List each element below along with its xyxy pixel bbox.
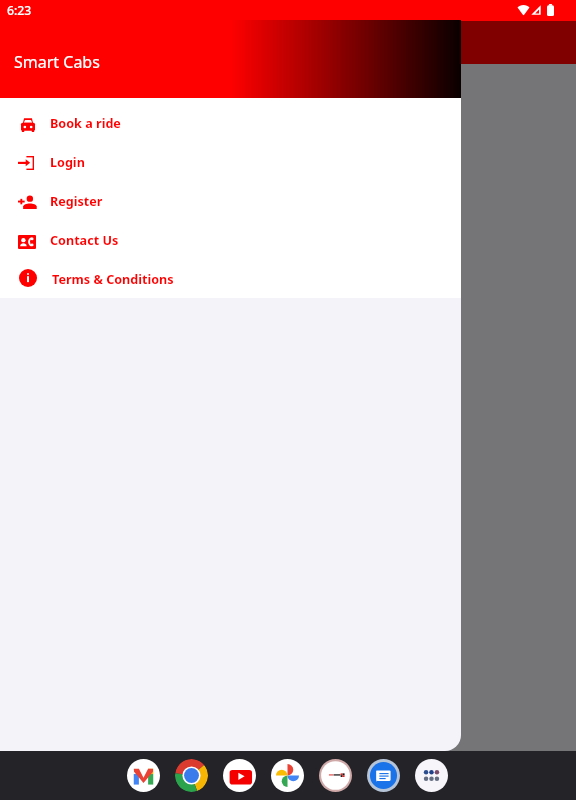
button[interactable]: Messages	[367, 759, 400, 792]
staticText: Register	[50, 193, 103, 210]
button[interactable]: Login	[0, 143, 461, 182]
button[interactable]: Gmail	[127, 759, 160, 792]
button[interactable]: Contact Us	[0, 221, 461, 260]
staticText: Smart Cabs	[14, 51, 100, 73]
button[interactable]: All apps	[415, 759, 448, 792]
button[interactable]: Chrome	[175, 759, 208, 792]
staticText: Contact Us	[50, 232, 119, 249]
button[interactable]: Google Photos	[271, 759, 304, 792]
button[interactable]: Terms & Conditions	[0, 260, 461, 298]
staticText: 6:23	[7, 2, 32, 19]
staticText: Terms & Conditions	[52, 271, 174, 288]
button[interactable]: YouTube	[223, 759, 256, 792]
button[interactable]: Smart Cabs app	[319, 759, 352, 792]
button[interactable]: Book a ride	[0, 104, 461, 143]
staticText: Book a ride	[50, 115, 121, 132]
button[interactable]: Register	[0, 182, 461, 221]
staticText: Login	[50, 154, 85, 171]
